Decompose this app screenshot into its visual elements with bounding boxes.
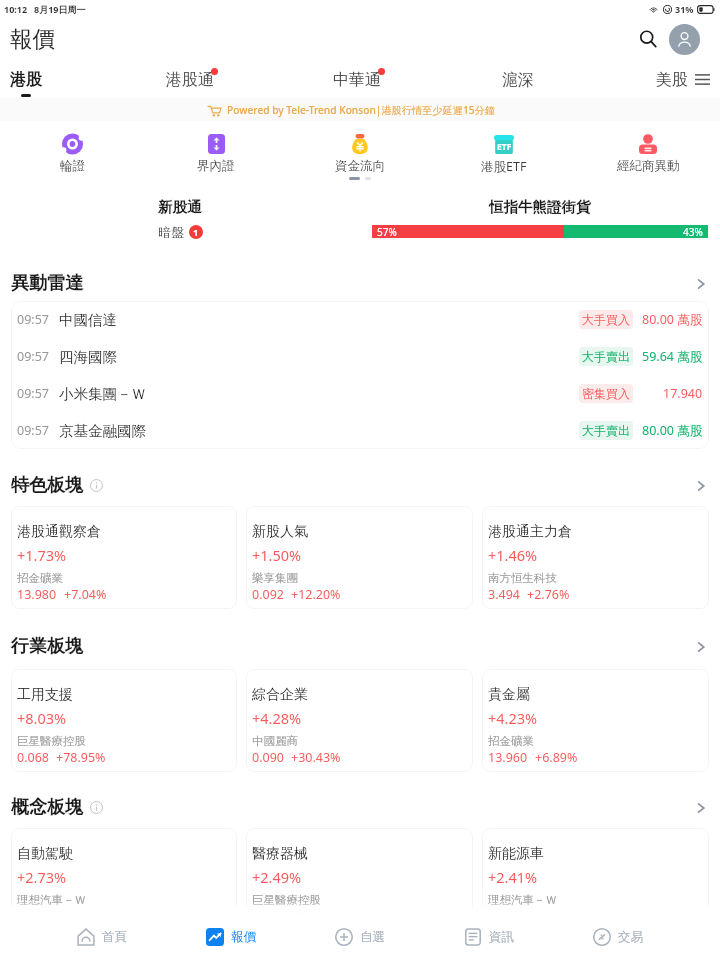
staticText: 樂享集團: [252, 571, 298, 585]
staticText: 輪證: [60, 158, 85, 174]
staticText: 新能源車: [488, 845, 544, 863]
staticText: 資金流向: [335, 158, 385, 174]
staticText: 57%: [377, 225, 397, 238]
staticText: 3.494: [488, 586, 520, 603]
staticText: 京基金融國際: [59, 422, 146, 440]
staticText: 大手買入: [582, 312, 630, 327]
button[interactable]: 09:57: [17, 412, 703, 449]
staticText: 自選: [360, 929, 385, 945]
staticText: +2.73%: [17, 867, 67, 887]
staticText: 交易: [618, 929, 643, 945]
button[interactable]: 09:57: [17, 375, 703, 412]
staticText: 大手賣出: [582, 349, 630, 364]
button[interactable]: 貴金屬: [482, 669, 709, 772]
staticText: 中華通: [333, 70, 381, 90]
staticText: 8月19日周一: [34, 3, 86, 15]
staticText: 新股人氣: [252, 523, 308, 541]
button[interactable]: 綜合企業: [246, 669, 473, 772]
staticText: 新股通: [158, 198, 202, 216]
staticText: 中國信達: [59, 311, 117, 329]
staticText: 理想汽車－Ｗ: [488, 893, 557, 907]
button[interactable]: ETF: [432, 134, 576, 175]
button[interactable]: 資金流向: [288, 134, 432, 174]
button[interactable]: 09:57: [17, 338, 703, 375]
button[interactable]: More tabs: [691, 68, 713, 90]
staticText: 09:57: [17, 422, 49, 439]
button[interactable]: 09:57: [17, 301, 703, 338]
button[interactable]: 工用支援: [11, 669, 237, 772]
staticText: 界內證: [197, 158, 235, 174]
staticText: 10:12: [4, 3, 28, 15]
button[interactable]: 輪證: [0, 134, 144, 174]
button[interactable]: 自動駕駛: [11, 828, 237, 931]
staticText: +2.49%: [252, 867, 302, 887]
staticText: +2.41%: [488, 867, 538, 887]
staticText: 資訊: [489, 929, 514, 945]
staticText: 異動雷達: [11, 272, 83, 295]
button[interactable]: 資訊: [453, 913, 525, 960]
staticText: 59.64 萬股: [642, 348, 703, 365]
staticText: 四海國際: [59, 348, 117, 366]
button[interactable]: Profile: [669, 24, 700, 55]
button[interactable]: 新股通: [120, 198, 240, 240]
button[interactable]: 港股通主力倉: [482, 506, 709, 609]
staticText: 港股通: [166, 70, 214, 90]
staticText: 南方恒生科技: [488, 571, 557, 585]
staticText: 港股: [10, 70, 42, 90]
button[interactable]: 首頁: [66, 913, 138, 960]
staticText: 滬深: [502, 70, 534, 90]
button[interactable]: 異動雷達: [11, 266, 708, 301]
button[interactable]: 中華通: [323, 60, 391, 98]
button[interactable]: 經紀商異動: [576, 134, 720, 174]
button[interactable]: 新股人氣: [246, 506, 473, 609]
button[interactable]: 概念板塊: [11, 790, 708, 825]
button[interactable]: 滬深: [492, 60, 544, 98]
staticText: +7.04%: [64, 586, 107, 603]
staticText: 暗盤: [158, 224, 184, 240]
staticText: 工用支援: [17, 686, 73, 704]
button[interactable]: 自選: [324, 913, 396, 960]
staticText: 中國麗商: [252, 734, 298, 748]
staticText: +1.73%: [17, 545, 67, 565]
staticText: +4.28%: [252, 708, 302, 728]
staticText: 1: [193, 226, 199, 239]
staticText: Powered by Tele-Trend Konson|港股行情至少延遲15分…: [227, 103, 495, 117]
staticText: 大手賣出: [582, 423, 630, 438]
staticText: 31%: [675, 3, 694, 15]
staticText: 0.068: [17, 749, 49, 766]
staticText: 0.090: [252, 749, 284, 766]
staticText: 自動駕駛: [17, 845, 73, 863]
button[interactable]: 美股: [646, 60, 698, 98]
button[interactable]: 行業板塊: [11, 629, 708, 664]
button[interactable]: 港股通: [156, 60, 224, 98]
staticText: 招金礦業: [17, 571, 63, 585]
staticText: 13.980: [17, 586, 57, 603]
button[interactable]: 恒指牛熊證街貨: [372, 198, 708, 238]
staticText: 巨星醫療控股: [17, 734, 86, 748]
button[interactable]: 特色板塊: [11, 468, 708, 503]
staticText: 貴金屬: [488, 686, 530, 704]
staticText: 綜合企業: [252, 686, 308, 704]
button[interactable]: 新能源車: [482, 828, 709, 931]
staticText: 0.092: [252, 586, 284, 603]
staticText: +2.76%: [527, 586, 570, 603]
staticText: +78.95%: [56, 749, 106, 766]
staticText: 首頁: [102, 929, 127, 945]
staticText: 17.940: [663, 385, 703, 402]
staticText: 09:57: [17, 311, 49, 328]
button[interactable]: 報價: [195, 913, 267, 960]
button[interactable]: 港股通觀察倉: [11, 506, 237, 609]
button[interactable]: 交易: [582, 913, 654, 960]
staticText: +4.23%: [488, 708, 538, 728]
staticText: 醫療器械: [252, 845, 308, 863]
staticText: +12.20%: [291, 586, 341, 603]
button[interactable]: 醫療器械: [246, 828, 473, 931]
button[interactable]: 港股: [0, 60, 52, 98]
button[interactable]: Search: [633, 24, 663, 54]
button[interactable]: 界內證: [144, 134, 288, 174]
